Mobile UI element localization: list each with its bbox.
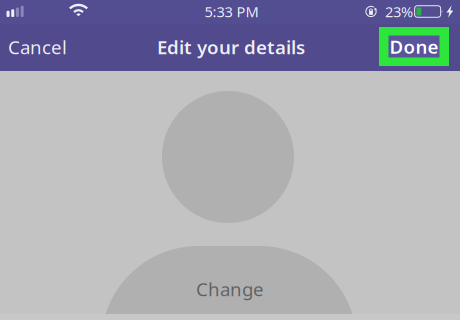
button[interactable]: Cancel [8,30,80,64]
staticText: 23% [385,2,413,21]
staticText: Done [389,34,438,59]
staticText: Cancel [8,35,67,59]
staticText: 5:33 PM [204,2,258,21]
staticText: Edit your details [157,35,305,59]
button[interactable]: Done [379,27,449,66]
staticText: Change [196,277,264,301]
button[interactable]: Change [0,71,460,314]
